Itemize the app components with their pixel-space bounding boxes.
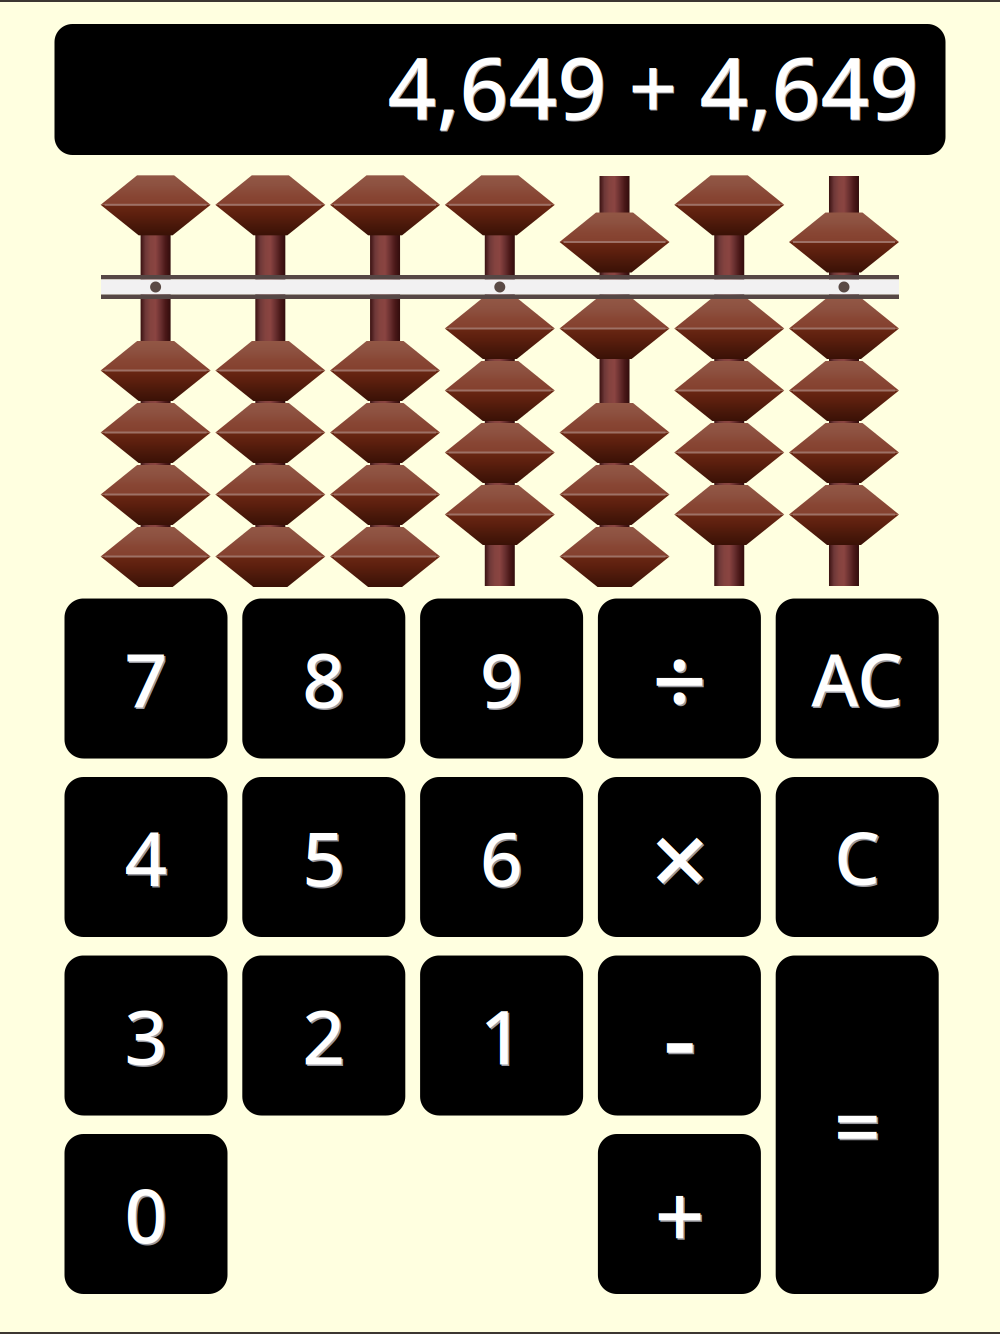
- staticText: 4,649 + 4,649: [388, 31, 919, 144]
- staticText: 0: [124, 1164, 167, 1264]
- button[interactable]: 5: [242, 777, 405, 937]
- button[interactable]: Earth bead 2, ten thousands: [330, 403, 440, 462]
- staticText: 9: [482, 630, 525, 730]
- staticText: 7: [126, 630, 169, 730]
- button[interactable]: AC: [776, 598, 939, 758]
- button[interactable]: Earth bead 2, tens: [674, 361, 784, 420]
- button[interactable]: 6: [420, 777, 583, 937]
- button[interactable]: -: [598, 955, 761, 1115]
- button[interactable]: Earth bead 1, thousands: [445, 299, 555, 358]
- button[interactable]: Earth bead 4, ones: [789, 485, 899, 544]
- button[interactable]: Earth bead 1, hundred thousands: [215, 341, 325, 400]
- staticText: 0: [126, 1166, 169, 1265]
- button[interactable]: Heaven bead, hundred thousands: [215, 175, 325, 234]
- button[interactable]: Earth bead 3, tens: [674, 423, 784, 482]
- button[interactable]: Heaven bead, hundreds: [559, 212, 669, 271]
- button[interactable]: Earth bead 2, thousands: [445, 361, 555, 420]
- button[interactable]: 4,649 + 4,649: [54, 24, 945, 155]
- button[interactable]: Earth bead 3, ten thousands: [330, 465, 440, 524]
- button[interactable]: Earth bead 2, ones: [789, 361, 899, 420]
- staticText: 9: [480, 629, 523, 728]
- button[interactable]: Earth bead 2, millions: [101, 403, 211, 462]
- button[interactable]: 2: [242, 955, 405, 1115]
- staticText: 4: [124, 807, 167, 907]
- staticText: 5: [302, 807, 345, 907]
- button[interactable]: 3: [64, 955, 227, 1115]
- staticText: =: [834, 1070, 881, 1180]
- staticText: =: [835, 1071, 882, 1181]
- staticText: 2: [302, 986, 345, 1085]
- staticText: 6: [480, 807, 523, 907]
- staticText: 1: [480, 986, 523, 1085]
- staticText: 7: [124, 629, 167, 728]
- button[interactable]: 7: [64, 598, 227, 758]
- button[interactable]: 0: [64, 1134, 227, 1294]
- button[interactable]: Earth bead 4, hundreds: [559, 527, 669, 586]
- button[interactable]: Earth bead 3, hundreds: [559, 465, 669, 524]
- button[interactable]: 4: [64, 777, 227, 937]
- button[interactable]: 1: [420, 955, 583, 1115]
- button[interactable]: +: [598, 1134, 761, 1294]
- staticText: C: [834, 809, 880, 905]
- button[interactable]: Heaven bead, tens: [674, 175, 784, 234]
- staticText: 8: [304, 630, 347, 730]
- button[interactable]: Earth bead 2, hundreds: [559, 403, 669, 462]
- staticText: 3: [124, 986, 167, 1085]
- button[interactable]: 8: [242, 598, 405, 758]
- staticText: +: [654, 1156, 704, 1272]
- staticText: ×: [650, 788, 709, 926]
- button[interactable]: Earth bead 3, thousands: [445, 423, 555, 482]
- staticText: 1: [482, 987, 525, 1087]
- button[interactable]: Earth bead 2, hundred thousands: [215, 403, 325, 462]
- button[interactable]: Earth bead 4, tens: [674, 485, 784, 544]
- staticText: -: [664, 968, 697, 1106]
- button[interactable]: Heaven bead, millions: [101, 175, 211, 234]
- button[interactable]: C: [776, 777, 939, 937]
- staticText: ×: [651, 789, 710, 927]
- staticText: 2: [304, 987, 347, 1087]
- button[interactable]: 9: [420, 598, 583, 758]
- button[interactable]: =: [776, 955, 939, 1294]
- button[interactable]: Earth bead 1, ones: [789, 299, 899, 358]
- button[interactable]: Earth bead 3, ones: [789, 423, 899, 482]
- button[interactable]: Heaven bead, ten thousands: [330, 175, 440, 234]
- button[interactable]: Earth bead 1, ten thousands: [330, 341, 440, 400]
- staticText: ÷: [653, 616, 708, 744]
- button[interactable]: Earth bead 3, millions: [101, 465, 211, 524]
- staticText: AC: [813, 632, 905, 728]
- button[interactable]: Earth bead 4, millions: [101, 527, 211, 586]
- staticText: 4,649 + 4,649: [387, 30, 918, 143]
- button[interactable]: Heaven bead, ones: [789, 212, 899, 271]
- staticText: 3: [126, 987, 169, 1087]
- button[interactable]: Earth bead 4, thousands: [445, 485, 555, 544]
- staticText: 5: [304, 809, 347, 908]
- button[interactable]: Earth bead 1, hundreds: [559, 299, 669, 358]
- staticText: 4: [126, 809, 169, 908]
- button[interactable]: Earth bead 1, millions: [101, 341, 211, 400]
- staticText: -: [663, 966, 696, 1104]
- button[interactable]: Earth bead 1, tens: [674, 299, 784, 358]
- button[interactable]: Earth bead 3, hundred thousands: [215, 465, 325, 524]
- button[interactable]: ×: [598, 777, 761, 937]
- staticText: +: [656, 1157, 706, 1274]
- staticText: AC: [811, 631, 903, 726]
- staticText: ÷: [652, 615, 707, 742]
- button[interactable]: Earth bead 4, hundred thousands: [215, 527, 325, 586]
- staticText: 6: [482, 809, 525, 908]
- button[interactable]: Earth bead 4, ten thousands: [330, 527, 440, 586]
- button[interactable]: ÷: [598, 598, 761, 758]
- staticText: C: [836, 811, 882, 906]
- staticText: 8: [302, 629, 345, 728]
- button[interactable]: Heaven bead, thousands: [445, 175, 555, 234]
